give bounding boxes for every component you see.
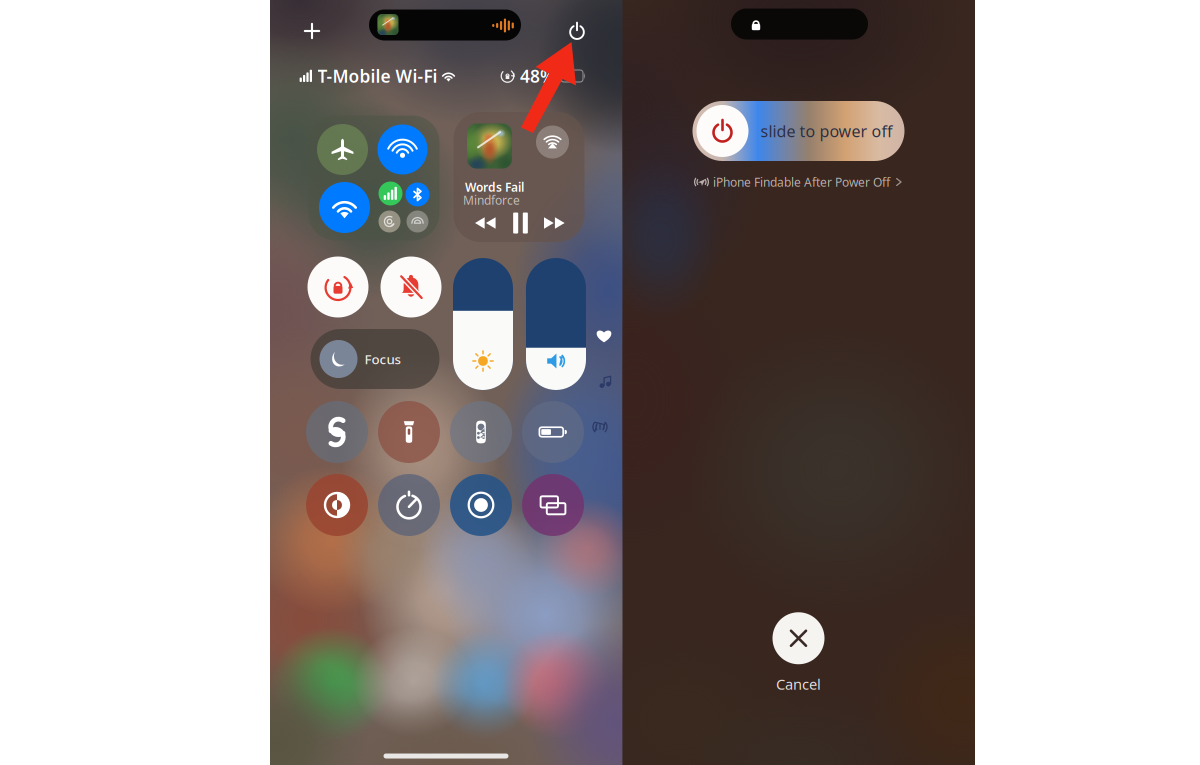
staticText: Focus: [364, 350, 400, 368]
staticText: T-Mobile Wi-Fi: [317, 64, 437, 87]
button[interactable]: Add: [303, 22, 320, 39]
staticText: iPhone Findable After Power Off: [713, 174, 890, 190]
button[interactable]: iPhone Findable After Power Off: [694, 174, 903, 190]
button[interactable]: Flashlight: [378, 401, 440, 463]
button[interactable]: [453, 258, 513, 390]
button[interactable]: Silent Mode: [380, 256, 441, 317]
button[interactable]: Focus: [310, 329, 439, 389]
button[interactable]: Low Power Mode: [522, 401, 584, 463]
button[interactable]: Rewind: [475, 216, 496, 229]
button[interactable]: Screen Record: [450, 474, 512, 536]
button[interactable]: Bluetooth: [405, 182, 429, 206]
button[interactable]: Personal Hotspot: [406, 210, 428, 232]
button[interactable]: Pause: [513, 212, 528, 233]
button[interactable]: Dark Mode: [306, 474, 368, 536]
button[interactable]: [526, 258, 586, 390]
button[interactable]: Apple TV Remote: [450, 401, 512, 463]
button[interactable]: Fast Forward: [544, 216, 565, 229]
button[interactable]: Screen Mirroring: [522, 474, 584, 536]
button[interactable]: Timer: [378, 474, 440, 536]
staticText: Cancel: [776, 674, 821, 694]
staticText: slide to power off: [760, 120, 892, 142]
button[interactable]: Airplane Mode: [317, 124, 368, 175]
staticText: Mindforce: [463, 192, 520, 208]
button[interactable]: Wi-Fi: [319, 182, 370, 233]
button[interactable]: Rotation Lock: [307, 256, 368, 317]
button[interactable]: Shazam: [306, 401, 368, 463]
button[interactable]: Cancel: [772, 612, 824, 694]
staticText: Words Fail: [465, 179, 524, 195]
button[interactable]: AirDrop: [377, 124, 427, 174]
button[interactable]: slide to power off: [692, 101, 904, 161]
button[interactable]: AirPlay: [536, 125, 569, 158]
button[interactable]: Cellular Data: [378, 181, 402, 205]
staticText: 48%: [520, 64, 555, 87]
button[interactable]: Power: [567, 21, 586, 40]
button[interactable]: Satellite: [378, 210, 400, 232]
